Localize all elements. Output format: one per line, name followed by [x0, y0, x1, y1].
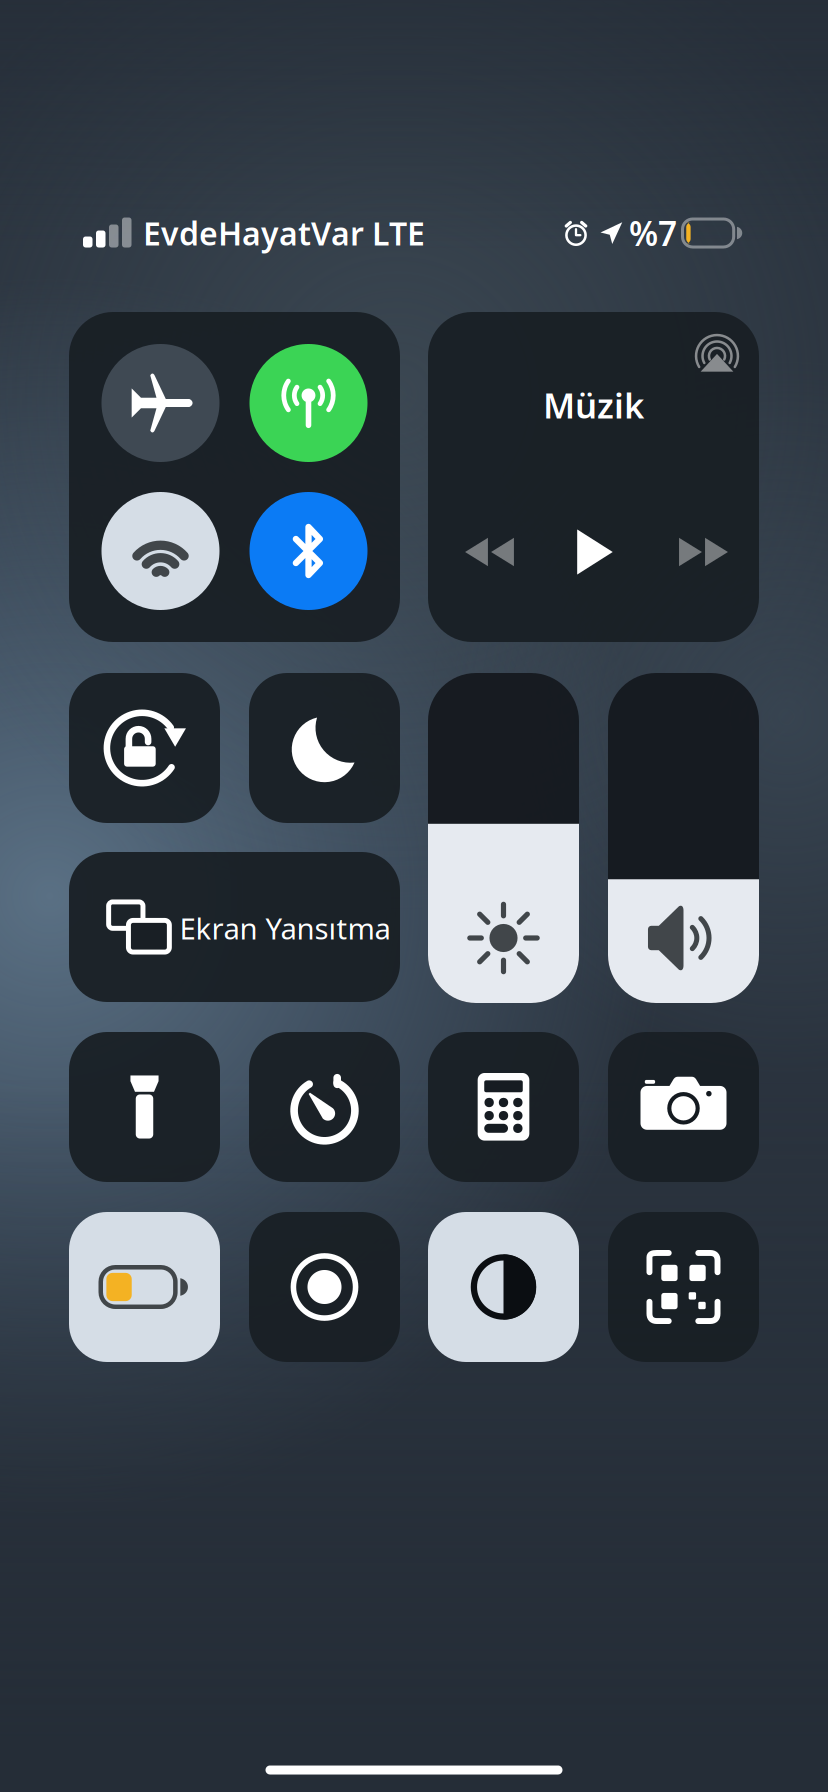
button[interactable]: Airplane Mode: [101, 344, 219, 462]
button[interactable]: Flashlight: [69, 1032, 220, 1182]
button[interactable]: AirPlay: [688, 327, 746, 385]
button[interactable]: Screen Recording: [249, 1212, 400, 1362]
staticText: Ekran Yansıtma: [179, 908, 390, 947]
staticText: EvdeHayatVar LTE: [143, 212, 425, 254]
button[interactable]: Calculator: [428, 1032, 579, 1182]
button[interactable]: Dark Mode: [428, 1212, 579, 1362]
button[interactable]: Low Power Mode: [69, 1212, 220, 1362]
button[interactable]: Rewind: [448, 515, 532, 589]
button[interactable]: Cellular Data: [249, 344, 367, 462]
button[interactable]: Screen Mirroring: [69, 852, 400, 1002]
button[interactable]: Bluetooth: [249, 492, 367, 610]
button[interactable]: Timer: [249, 1032, 400, 1182]
button[interactable]: Camera: [608, 1032, 759, 1182]
button[interactable]: Scan QR Code: [608, 1212, 759, 1362]
button[interactable]: Wi-Fi: [101, 492, 219, 610]
staticText: %7: [629, 211, 677, 255]
button[interactable]: Fast Forward: [662, 515, 746, 589]
button[interactable]: Play: [551, 515, 635, 589]
button[interactable]: Do Not Disturb: [249, 673, 400, 823]
staticText: Müzik: [543, 382, 644, 428]
button[interactable]: Volume: [608, 673, 759, 1003]
button[interactable]: Brightness: [428, 673, 579, 1003]
button[interactable]: Rotation Lock: [69, 673, 220, 823]
